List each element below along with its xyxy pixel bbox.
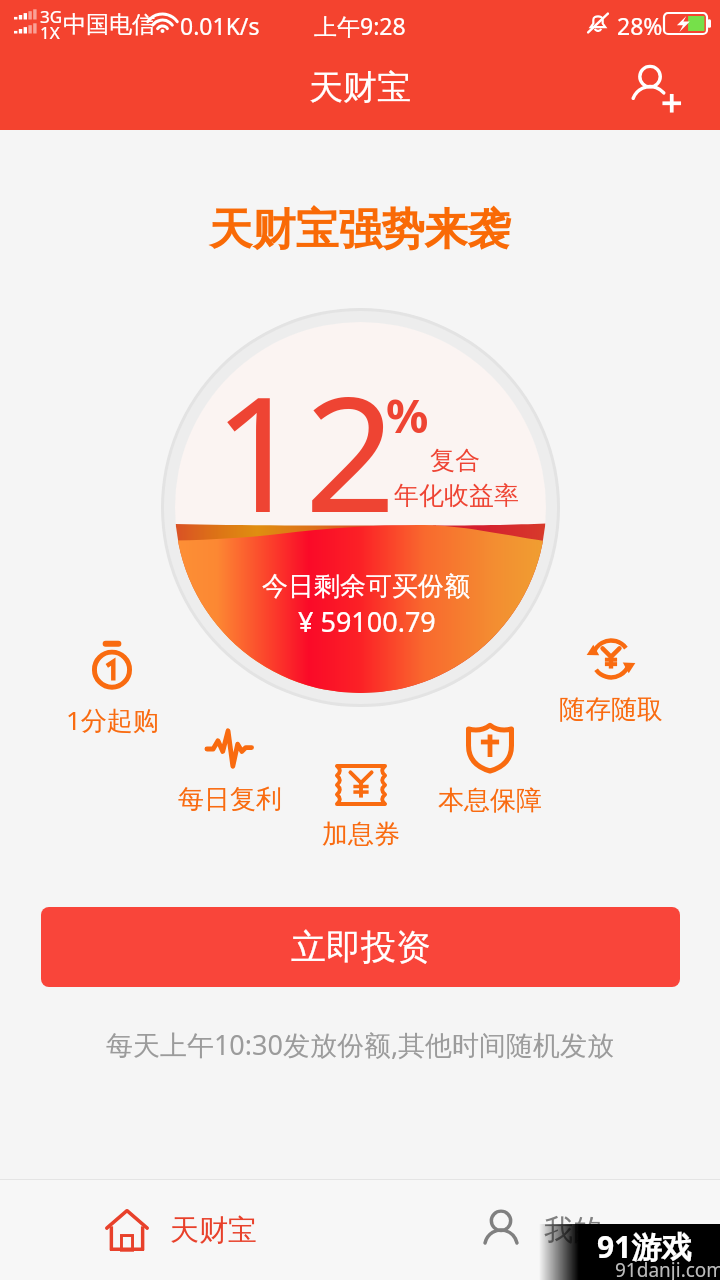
button[interactable]: 立即投资 <box>41 907 680 987</box>
staticText: 本息保障 <box>438 784 542 817</box>
staticText: 1分起购 <box>66 702 159 736</box>
staticText: 天财宝强势来袭 <box>0 203 720 257</box>
staticText: 28% <box>617 10 663 41</box>
button[interactable]: 加息券 <box>276 760 446 852</box>
staticText: 我的 <box>544 1212 602 1249</box>
staticText: 91danji.com <box>615 1257 720 1280</box>
staticText: 年化收益率 <box>394 480 519 511</box>
button[interactable]: 天财宝 <box>0 1180 360 1280</box>
staticText: 91游戏 <box>597 1226 692 1267</box>
staticText: 1X <box>40 21 60 44</box>
staticText: 今日剩余可买份额 <box>262 570 470 603</box>
button[interactable]: 随存随取 <box>526 630 696 727</box>
staticText: 12 <box>213 341 397 559</box>
staticText: 天财宝 <box>309 66 411 109</box>
staticText: 立即投资 <box>291 925 431 969</box>
button[interactable]: 本息保障 <box>405 719 575 818</box>
staticText: 0.01K/s <box>180 10 260 41</box>
staticText: 天财宝 <box>170 1212 257 1249</box>
staticText: 每日复利 <box>178 783 282 816</box>
staticText: 上午9:28 <box>314 10 406 41</box>
staticText: 加息券 <box>322 818 400 851</box>
button[interactable]: Add contact <box>624 58 686 120</box>
staticText: ¥ 59100.79 <box>298 603 436 640</box>
staticText: 3G <box>40 5 63 28</box>
button[interactable]: 1分起购 <box>27 635 197 736</box>
staticText: 中国电信 <box>63 10 155 39</box>
staticText: % <box>386 383 429 447</box>
staticText: 随存随取 <box>559 693 663 726</box>
button[interactable]: 每日复利 <box>145 721 315 817</box>
staticText: 复合 <box>430 445 480 476</box>
button[interactable]: 我的 <box>360 1180 720 1280</box>
staticText: 每天上午10:30发放份额,其他时间随机发放 <box>0 1026 720 1063</box>
